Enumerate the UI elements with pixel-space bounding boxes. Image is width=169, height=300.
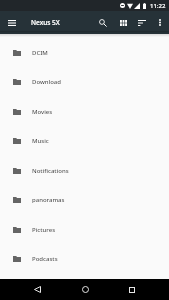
staticText: Pictures (32, 226, 56, 234)
button[interactable]: Home (71, 279, 99, 300)
staticText: Movies (32, 108, 53, 116)
button[interactable]: Movies (0, 95, 169, 125)
staticText: DCIM (32, 49, 48, 57)
button[interactable]: Music (0, 124, 169, 154)
button[interactable]: Notifications (0, 154, 169, 184)
button[interactable]: Search (92, 11, 114, 34)
button[interactable]: Download (0, 65, 169, 95)
button[interactable]: More options (151, 11, 168, 34)
button[interactable]: Pictures (0, 213, 169, 243)
button[interactable]: Sort (133, 11, 151, 34)
staticText: Download (32, 78, 61, 86)
button[interactable]: Podcasts (0, 242, 169, 272)
staticText: 11:22 (150, 2, 166, 10)
button[interactable]: Recent apps (118, 279, 146, 300)
button[interactable]: panoramas (0, 183, 169, 213)
button[interactable]: Grid view (114, 11, 133, 34)
button[interactable]: DCIM (0, 36, 169, 66)
staticText: Notifications (32, 167, 69, 175)
staticText: Podcasts (32, 255, 58, 263)
staticText: panoramas (32, 196, 65, 204)
staticText: Nexus 5X (31, 18, 60, 27)
button[interactable]: Navigation drawer (0, 11, 23, 34)
button[interactable]: Back (23, 279, 51, 300)
staticText: Music (32, 137, 49, 145)
